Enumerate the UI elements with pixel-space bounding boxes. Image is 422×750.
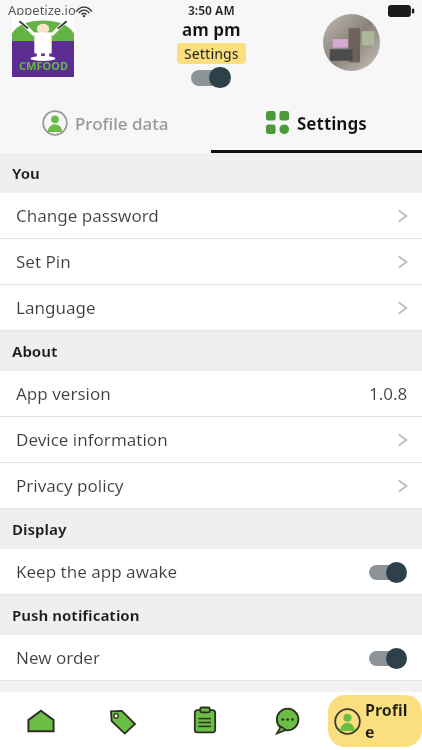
button[interactable]: Language (0, 285, 422, 330)
button[interactable]: Settings (211, 95, 422, 150)
button[interactable]: Chat (246, 692, 328, 750)
button[interactable]: Home (0, 692, 82, 750)
button[interactable]: Change password (0, 193, 422, 238)
staticText: About (12, 341, 58, 361)
button[interactable] (368, 647, 408, 669)
staticText: Appetize.io (8, 1, 76, 19)
staticText: Settings (297, 112, 367, 135)
staticText: Settings (184, 44, 239, 63)
button[interactable]: Set Pin (0, 239, 422, 284)
staticText: Push notification (12, 605, 140, 625)
button[interactable]: App version (0, 371, 422, 416)
staticText: Set Pin (16, 250, 397, 273)
button[interactable] (368, 561, 408, 583)
button[interactable]: Profile (328, 692, 422, 750)
button[interactable]: Device information (0, 417, 422, 462)
staticText: New order (16, 646, 368, 669)
staticText: Keep the app awake (16, 560, 368, 583)
staticText: Device information (16, 428, 397, 451)
staticText: am pm (182, 18, 241, 41)
staticText: Display (12, 519, 67, 539)
button[interactable]: Keep the app awake (0, 549, 422, 594)
staticText: Language (16, 296, 397, 319)
staticText: You (12, 163, 40, 183)
button[interactable]: Privacy policy (0, 463, 422, 508)
staticText: CMFOOD (19, 58, 68, 73)
staticText: App version (16, 382, 369, 405)
button[interactable]: New order (0, 635, 422, 680)
button[interactable]: Profile data (0, 95, 211, 150)
staticText: 3:50 AM (188, 2, 235, 18)
staticText: Change password (16, 204, 397, 227)
staticText: Profile (365, 699, 416, 743)
staticText: Profile data (75, 112, 169, 135)
staticText: 1.0.8 (369, 382, 408, 405)
button[interactable]: Orders (164, 692, 246, 750)
staticText: Privacy policy (16, 474, 397, 497)
button[interactable]: Offers (82, 692, 164, 750)
